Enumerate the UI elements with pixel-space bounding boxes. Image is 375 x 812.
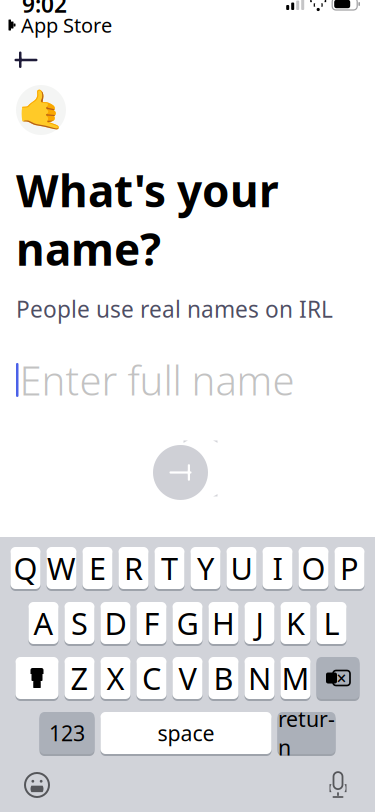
staticText: X	[106, 658, 124, 698]
staticText: What's your name?	[16, 161, 279, 278]
staticText: 123	[49, 719, 85, 747]
button[interactable]: M	[280, 657, 310, 701]
button[interactable]: W	[46, 547, 76, 591]
staticText: App Store	[21, 12, 112, 38]
staticText: C	[142, 658, 161, 698]
button[interactable]: X	[100, 657, 130, 701]
staticText: J	[255, 603, 263, 643]
button[interactable]: Delete	[316, 657, 359, 701]
staticText: F	[143, 603, 159, 643]
button[interactable]: A	[28, 602, 58, 646]
button[interactable]: L	[316, 602, 346, 646]
button[interactable]: Enter full name	[16, 352, 359, 408]
button[interactable]: V	[172, 657, 202, 701]
button[interactable]: T	[154, 547, 184, 591]
button[interactable]: Dictate	[315, 766, 361, 804]
button[interactable]: Emoji keyboard	[14, 766, 60, 804]
button[interactable]: D	[100, 602, 130, 646]
staticText: N	[248, 658, 271, 698]
button[interactable]: Continue	[143, 437, 217, 507]
staticText: T	[161, 548, 178, 588]
staticText: P	[340, 548, 359, 588]
button[interactable]: G	[172, 602, 202, 646]
staticText: Q	[13, 548, 37, 588]
staticText: R	[124, 548, 143, 588]
staticText: D	[104, 603, 126, 643]
staticText: L	[323, 603, 339, 643]
staticText: S	[71, 603, 88, 643]
button[interactable]: 123	[39, 712, 94, 756]
button[interactable]: O	[298, 547, 328, 591]
staticText: H	[212, 603, 235, 643]
button[interactable]: J	[244, 602, 274, 646]
staticText: return	[278, 705, 335, 761]
staticText: People use real names on IRL	[16, 294, 333, 324]
staticText: E	[89, 548, 106, 588]
button[interactable]: Q	[10, 547, 40, 591]
staticText: 🤙	[17, 88, 65, 132]
button[interactable]: U	[226, 547, 256, 591]
button[interactable]: Y	[190, 547, 220, 591]
button[interactable]: E	[82, 547, 112, 591]
staticText: Y	[197, 548, 214, 588]
staticText: O	[301, 548, 325, 588]
button[interactable]: return	[277, 712, 335, 756]
staticText: V	[178, 658, 196, 698]
button[interactable]: Shift	[15, 657, 58, 701]
button[interactable]: K	[280, 602, 310, 646]
button[interactable]: B	[208, 657, 238, 701]
button[interactable]: Back	[3, 39, 49, 81]
staticText: K	[286, 603, 305, 643]
staticText: W	[47, 548, 76, 588]
staticText: U	[230, 548, 252, 588]
button[interactable]: Z	[64, 657, 94, 701]
staticText: G	[176, 603, 198, 643]
button[interactable]: H	[208, 602, 238, 646]
button[interactable]: N	[244, 657, 274, 701]
button[interactable]: F	[136, 602, 166, 646]
button[interactable]: P	[334, 547, 364, 591]
staticText: ×	[336, 666, 346, 689]
staticText: M	[281, 658, 309, 698]
staticText: 9:02	[22, 0, 67, 19]
button[interactable]: R	[118, 547, 148, 591]
staticText: I	[272, 548, 282, 588]
button[interactable]: I	[262, 547, 292, 591]
button[interactable]: C	[136, 657, 166, 701]
staticText: B	[213, 658, 233, 698]
staticText: Z	[70, 658, 88, 698]
button[interactable]: space	[100, 712, 271, 756]
staticText: space	[157, 719, 214, 747]
staticText: A	[33, 603, 53, 643]
staticText: Enter full name	[19, 353, 294, 406]
button[interactable]: S	[64, 602, 94, 646]
